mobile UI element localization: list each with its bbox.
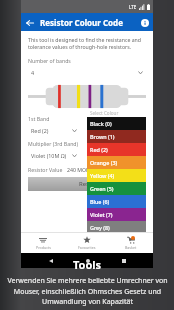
button[interactable]: Violet (10M Ω)	[31, 149, 77, 161]
staticText: Reset	[79, 180, 95, 188]
staticText: Number of bands	[28, 57, 71, 64]
button[interactable]: Back	[21, 14, 38, 31]
staticText: Yellow (4)	[90, 172, 115, 179]
button[interactable]: Violet (7)	[90, 208, 146, 221]
button[interactable]: Brown (1)	[90, 130, 146, 143]
staticText: 4	[31, 69, 35, 76]
button[interactable]: Blue (6)	[90, 195, 146, 208]
staticText: Resistor Colour Code	[40, 17, 123, 28]
button[interactable]: Back	[44, 254, 57, 267]
staticText: Blue (6)	[90, 198, 110, 205]
staticText: LTE	[129, 4, 137, 10]
button[interactable]: Orange (3)	[90, 156, 146, 169]
staticText: Grey (8)	[90, 224, 110, 231]
staticText: Orange (3)	[90, 159, 118, 166]
button[interactable]: 4	[31, 66, 143, 78]
button[interactable]: Recent apps	[117, 254, 130, 267]
staticText: Violet (7)	[90, 211, 113, 218]
staticText: Red (2)	[90, 146, 108, 153]
button[interactable]: Grey (8)	[90, 221, 146, 234]
staticText: Resistor Value	[28, 166, 63, 173]
staticText: This tool is designed to find the resist…	[28, 36, 146, 50]
button[interactable]: Home	[81, 254, 94, 267]
staticText: 1st Band	[28, 115, 50, 122]
button[interactable]: Reset	[28, 177, 146, 191]
button[interactable]: Red (2)	[90, 143, 146, 156]
staticText: 240 MOhms Ω	[67, 166, 102, 173]
staticText: Multiplier (3rd Band)	[28, 140, 79, 147]
staticText: Verwenden Sie mehrere beliebte Umrechner…	[7, 276, 168, 306]
staticText: Brown (1)	[90, 133, 115, 140]
staticText: Basket	[125, 245, 137, 250]
button[interactable]: Favourites	[65, 233, 109, 253]
staticText: Red (2)	[31, 127, 49, 134]
staticText: Tools	[73, 257, 102, 272]
staticText: Favourites	[78, 245, 96, 250]
staticText: Select Colour	[90, 110, 119, 116]
button[interactable]: Black (0)	[90, 117, 146, 130]
staticText: Products	[36, 245, 51, 250]
staticText: Violet (10M Ω)	[31, 152, 67, 159]
button[interactable]: Green (5)	[90, 182, 146, 195]
button[interactable]: Red (2)	[31, 124, 77, 136]
button[interactable]: Products	[21, 233, 65, 253]
staticText: Black (0)	[90, 120, 112, 127]
button[interactable]: Basket	[109, 233, 153, 253]
button[interactable]: White (9)	[90, 234, 146, 247]
staticText: Green (5)	[90, 185, 114, 192]
button[interactable]: Information	[136, 14, 153, 31]
button[interactable]: Yellow (4)	[90, 169, 146, 182]
